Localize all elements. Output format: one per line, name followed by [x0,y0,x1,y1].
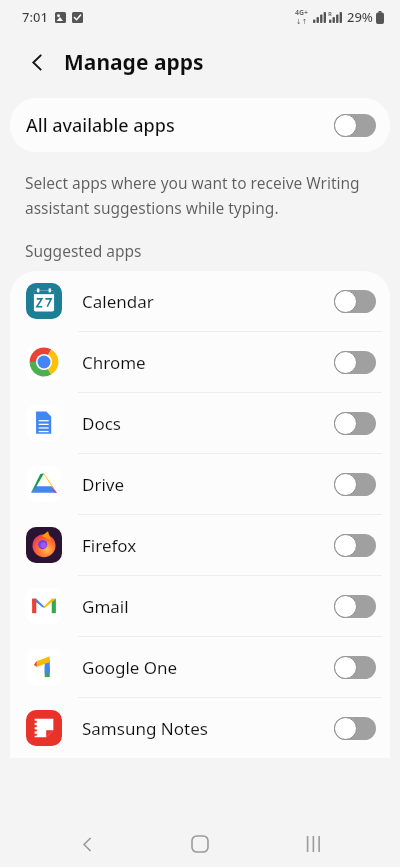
staticText: Chrome [82,351,334,374]
staticText: Manage apps [64,48,204,77]
staticText: Docs [82,412,334,435]
button[interactable]: Google One [10,637,390,697]
staticText: ↓↑ [296,18,308,26]
button[interactable]: Chrome [10,332,390,392]
button[interactable]: Drive [10,454,390,514]
staticText: 29% [347,8,373,26]
staticText: Firefox [82,534,334,557]
staticText: Drive [82,473,334,496]
staticText: 7:01 [22,8,48,26]
button[interactable]: Back [20,45,54,79]
button[interactable]: All available apps [10,98,390,152]
staticText: Select apps where you want to receive Wr… [25,172,375,218]
button[interactable]: Recent apps [287,821,339,867]
staticText: 4G+ [295,8,309,18]
button[interactable]: Samsung Notes [10,698,390,758]
staticText: Calendar [82,290,334,313]
staticText: Gmail [82,595,334,618]
staticText: Suggested apps [25,240,142,261]
staticText: Google One [82,656,334,679]
button[interactable]: Docs [10,393,390,453]
button[interactable]: Home [174,821,226,867]
staticText: All available apps [26,113,334,138]
button[interactable]: Firefox [10,515,390,575]
button[interactable]: Calendar [10,271,390,331]
button[interactable]: Back [61,821,113,867]
staticText: R [328,10,332,18]
button[interactable]: Gmail [10,576,390,636]
staticText: Samsung Notes [82,717,334,740]
